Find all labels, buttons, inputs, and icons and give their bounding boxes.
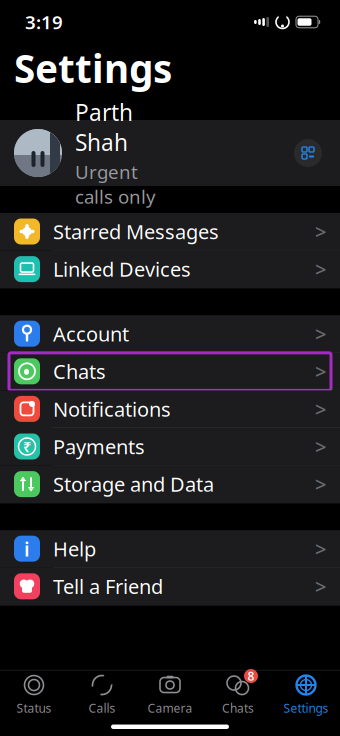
staticText: Settings [283, 700, 328, 716]
staticText: > [315, 256, 326, 282]
staticText: Status [16, 700, 51, 716]
button[interactable]: Status [0, 671, 68, 717]
button[interactable]: Settings [272, 671, 340, 717]
button[interactable]: Calls [68, 671, 136, 717]
button[interactable]: Parth Shah [0, 120, 340, 186]
staticText: 8 [247, 668, 254, 684]
staticText: > [315, 433, 326, 460]
staticText: > [315, 358, 326, 385]
button[interactable]: Storage and Data [0, 466, 340, 503]
staticText: > [315, 320, 326, 347]
staticText: Storage and Data [53, 471, 214, 497]
staticText: > [315, 535, 326, 562]
staticText: Calls [88, 700, 115, 716]
staticText: > [315, 218, 326, 245]
staticText: Tell a Friend [53, 573, 163, 600]
staticText: > [315, 396, 326, 422]
staticText: Urgent calls only [75, 159, 156, 209]
button[interactable]: Account [0, 315, 340, 353]
staticText: Settings [14, 42, 172, 94]
staticText: Help [53, 535, 96, 562]
staticText: Camera [147, 700, 192, 716]
button[interactable]: 8 [204, 671, 272, 717]
button[interactable]: Starred Messages [0, 213, 340, 251]
staticText: Linked Devices [53, 256, 191, 282]
button[interactable]: Notifications [0, 390, 340, 428]
button[interactable]: Tell a Friend [0, 568, 340, 605]
staticText: Parth Shah [75, 97, 133, 157]
staticText: Starred Messages [53, 218, 219, 245]
button[interactable]: Camera [136, 671, 204, 717]
button[interactable]: Linked Devices [0, 251, 340, 288]
staticText: ₹ [23, 437, 31, 456]
staticText: Account [53, 320, 129, 347]
staticText: Chats [222, 700, 254, 716]
staticText: 3:19 [25, 10, 63, 34]
button[interactable]: ₹ [0, 428, 340, 466]
staticText: Notifications [53, 396, 171, 422]
button[interactable]: i [0, 530, 340, 568]
staticText: i [24, 535, 30, 562]
staticText: Chats [53, 358, 106, 385]
staticText: > [315, 573, 326, 600]
button[interactable]: Chats [0, 353, 340, 390]
staticText: Payments [53, 433, 145, 460]
staticText: > [315, 471, 326, 497]
